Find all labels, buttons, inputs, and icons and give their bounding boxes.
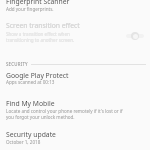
staticText: Locate and control your phone remotely i… [6, 108, 123, 114]
staticText: transitioning to another screen. [6, 37, 75, 43]
staticText: Security update [6, 130, 56, 139]
staticText: Show a transition effect when [6, 31, 70, 37]
button[interactable] [0, 69, 150, 91]
staticText: October 1, 2018 [6, 139, 41, 145]
button[interactable]: Screen transition effect toggle [126, 32, 144, 40]
button[interactable] [0, 0, 150, 16]
staticText: Screen transition effect [6, 21, 80, 30]
button[interactable] [0, 17, 150, 47]
staticText: Find My Mobile [6, 99, 55, 108]
staticText: Apps scanned at 00:13 [6, 79, 55, 85]
staticText: you forgot your unlock method. [6, 114, 75, 120]
button[interactable] [0, 128, 150, 150]
staticText: Google Play Protect [6, 71, 69, 80]
button[interactable] [0, 97, 150, 124]
staticText: Fingerprint Scanner [6, 0, 70, 6]
staticText: Add your fingerprints. [6, 6, 54, 12]
staticText: SECURITY [6, 61, 28, 67]
